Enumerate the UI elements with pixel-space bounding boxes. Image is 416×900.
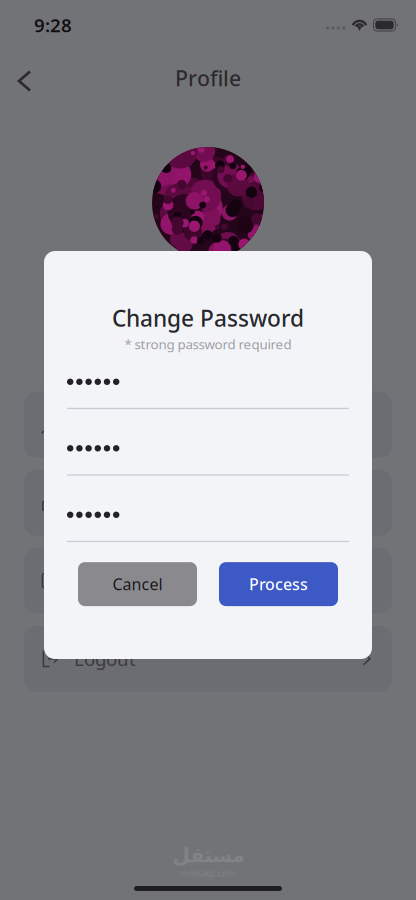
button[interactable]: Change Password [24, 470, 392, 536]
staticText: sarah.johnson@mail.com [97, 323, 318, 348]
staticText: Cancel [112, 573, 162, 595]
staticText: Privacy Policy [74, 568, 192, 593]
button[interactable]: Cancel [78, 562, 197, 606]
button[interactable]: Back [0, 50, 43, 106]
staticText: مستقل [172, 844, 244, 867]
staticText: Logout [74, 646, 136, 671]
staticText: Change Password [112, 303, 304, 333]
staticText: Change Password [74, 490, 230, 515]
button[interactable]: Privacy Policy [24, 548, 392, 614]
staticText: 9:28 [34, 13, 72, 37]
button[interactable]: Process [219, 562, 338, 606]
staticText: Profile [175, 64, 241, 92]
staticText: mostaql.com [179, 867, 236, 879]
button[interactable]: Logout [24, 626, 392, 692]
staticText: Sarah Johnson [105, 278, 310, 317]
staticText: * strong password required [124, 335, 291, 353]
button[interactable]: Edit Profile [24, 392, 392, 458]
staticText: Process [249, 573, 308, 595]
